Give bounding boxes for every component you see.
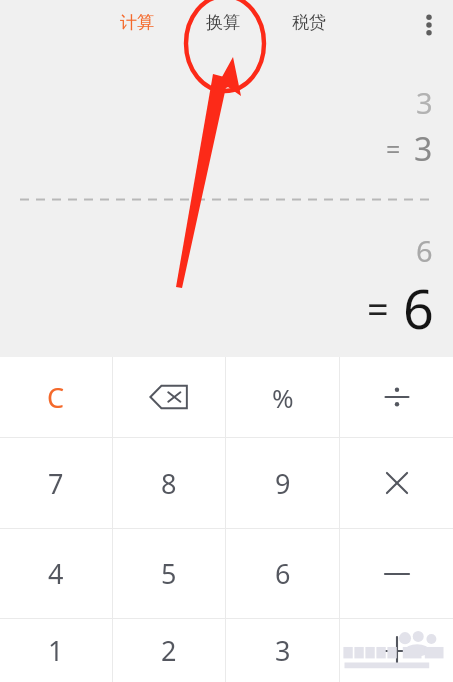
button[interactable]: Backspace xyxy=(113,357,225,437)
staticText: 6 xyxy=(416,231,433,270)
staticText: 2 xyxy=(161,632,177,669)
staticText: 9 xyxy=(275,465,291,502)
staticText: 6 xyxy=(275,555,291,592)
staticText: = xyxy=(386,132,401,166)
button[interactable]: Subtract xyxy=(340,529,453,618)
button[interactable]: C xyxy=(0,357,112,437)
button[interactable]: 8 xyxy=(113,438,225,528)
staticText: 1 xyxy=(48,632,64,669)
button[interactable]: 2 xyxy=(113,619,225,682)
button[interactable]: More options xyxy=(405,0,453,52)
button[interactable]: 3 xyxy=(226,619,339,682)
staticText: C xyxy=(47,379,65,416)
staticText: 7 xyxy=(48,465,64,502)
staticText: 3 xyxy=(416,83,433,122)
button[interactable]: 9 xyxy=(226,438,339,528)
button[interactable]: Add xyxy=(340,619,453,682)
button[interactable]: 4 xyxy=(0,529,112,618)
button[interactable]: 7 xyxy=(0,438,112,528)
staticText: 3 xyxy=(414,127,433,171)
staticText: 计算 xyxy=(120,12,154,33)
button[interactable]: % xyxy=(226,357,339,437)
staticText: 税贷 xyxy=(292,12,326,33)
button[interactable]: 税贷 xyxy=(280,0,338,47)
staticText: 5 xyxy=(161,555,177,592)
staticText: = xyxy=(367,282,389,334)
button[interactable]: 1 xyxy=(0,619,112,682)
staticText: 3 xyxy=(275,632,291,669)
button[interactable]: 计算 xyxy=(108,0,166,47)
staticText: 4 xyxy=(48,555,64,592)
staticText: 8 xyxy=(161,465,177,502)
button[interactable]: 5 xyxy=(113,529,225,618)
button[interactable]: 6 xyxy=(226,529,339,618)
button[interactable]: Multiply xyxy=(340,438,453,528)
staticText: 换算 xyxy=(206,12,240,33)
staticText: 6 xyxy=(403,271,434,345)
staticText: % xyxy=(272,380,294,415)
button[interactable]: 换算 xyxy=(194,0,252,47)
button[interactable]: Divide xyxy=(340,357,453,437)
